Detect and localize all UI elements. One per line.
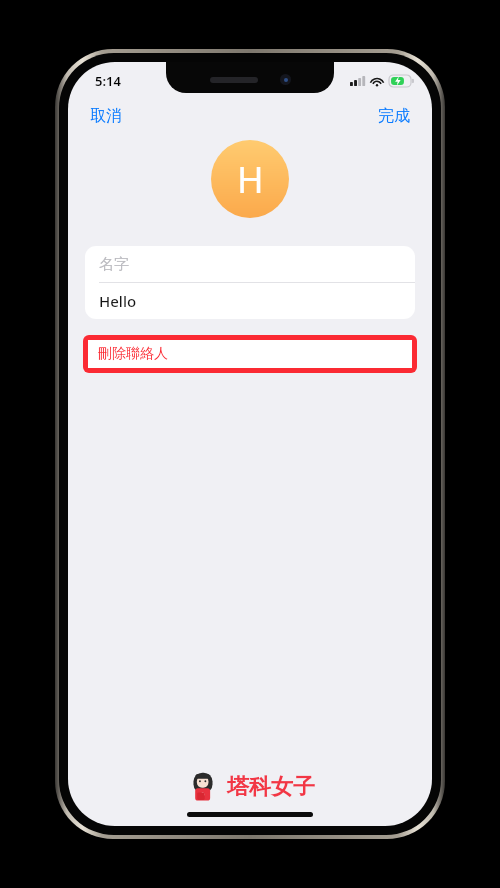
button[interactable]: Hello	[85, 283, 415, 319]
staticText: 名字	[99, 255, 129, 274]
button[interactable]: 刪除聯絡人	[83, 335, 417, 373]
staticText: 完成	[378, 106, 410, 126]
staticText: 取消	[90, 106, 122, 126]
staticText: H	[237, 155, 264, 204]
button[interactable]: 取消	[78, 100, 134, 132]
staticText: 刪除聯絡人	[98, 345, 168, 363]
button[interactable]: 名字	[85, 246, 415, 282]
button[interactable]: 完成	[366, 100, 422, 132]
staticText: Hello	[99, 291, 137, 311]
staticText: 塔科女子	[227, 773, 315, 801]
staticText: 5:14	[95, 72, 121, 90]
button[interactable]: Contact avatar H	[211, 140, 289, 218]
